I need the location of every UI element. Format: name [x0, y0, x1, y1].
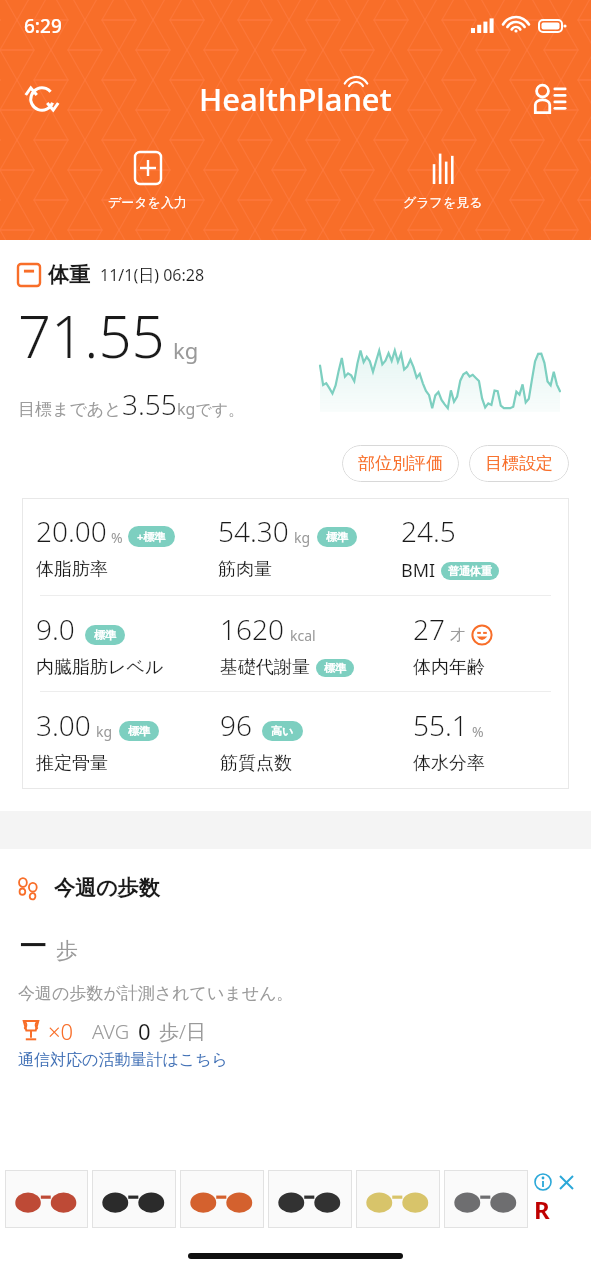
staticText: 目標設定	[485, 453, 553, 474]
staticText: 96	[220, 706, 252, 744]
staticText: 今週の歩数	[54, 875, 160, 901]
staticText: 内臓脂肪レベル	[36, 656, 164, 679]
staticText: 体水分率	[413, 752, 485, 775]
staticText: 体重	[48, 262, 90, 288]
staticText: 標準	[324, 661, 346, 675]
button[interactable]: Refresh	[14, 71, 70, 127]
staticText: 基礎代謝量	[220, 656, 310, 679]
staticText: kg	[173, 335, 199, 365]
staticText: %	[472, 722, 484, 741]
staticText: ー	[18, 927, 48, 965]
staticText: 部位別評価	[358, 453, 443, 474]
staticText: R	[534, 1193, 550, 1226]
staticText: kg	[294, 528, 311, 547]
staticText: 標準	[128, 724, 150, 738]
staticText: AVG	[92, 1018, 130, 1045]
staticText: グラフを見る	[403, 194, 483, 210]
staticText: 体内年齢	[413, 656, 485, 679]
staticText: +標準	[137, 529, 166, 544]
staticText: 筋質点数	[220, 752, 292, 775]
staticText: 27	[413, 610, 445, 648]
staticText: ×0	[48, 1016, 74, 1046]
button[interactable]: R	[0, 1166, 591, 1232]
staticText: HealthPlanet	[199, 78, 392, 120]
staticText: 目標まであと	[18, 399, 122, 420]
button[interactable]: 部位別評価	[342, 445, 459, 482]
staticText: 6:29	[24, 13, 62, 39]
staticText: 11/1(日) 06:28	[100, 264, 205, 286]
staticText: 0	[138, 1016, 151, 1046]
staticText: 普通体重	[448, 564, 492, 578]
staticText: 通信対応の活動量計はこちら	[18, 1050, 228, 1070]
staticText: 体脂肪率	[36, 558, 108, 581]
button[interactable]: 目標設定	[469, 445, 569, 482]
staticText: データを入力	[108, 194, 187, 210]
staticText: 3.00	[36, 706, 91, 744]
staticText: 54.30	[218, 512, 289, 550]
staticText: kg	[96, 722, 113, 741]
staticText: 標準	[94, 628, 116, 642]
staticText: 歩	[56, 937, 78, 965]
staticText: 1620	[220, 610, 284, 648]
staticText: 高い	[271, 724, 294, 738]
staticText: kgです。	[177, 398, 245, 420]
staticText: kcal	[290, 626, 316, 645]
button[interactable]: 通信対応の活動量計はこちら	[18, 1050, 228, 1070]
button[interactable]: グラフを見る	[295, 148, 591, 214]
staticText: 20.00	[36, 512, 107, 550]
staticText: 推定骨量	[36, 752, 108, 775]
staticText: 今週の歩数が計測されていません。	[18, 983, 294, 1004]
staticText: 3.55	[122, 385, 177, 423]
staticText: 71.55	[18, 296, 165, 375]
staticText: 24.5	[401, 512, 456, 550]
staticText: 歩/日	[159, 1018, 206, 1045]
staticText: 筋肉量	[218, 558, 272, 581]
staticText: BMI	[401, 558, 436, 583]
button[interactable]: データを入力	[0, 148, 295, 214]
staticText: 9.0	[36, 610, 75, 648]
staticText: %	[111, 528, 123, 547]
staticText: 才	[450, 626, 465, 645]
staticText: 55.1	[413, 706, 468, 744]
button[interactable]: Profile	[521, 71, 577, 127]
staticText: 標準	[326, 530, 348, 544]
